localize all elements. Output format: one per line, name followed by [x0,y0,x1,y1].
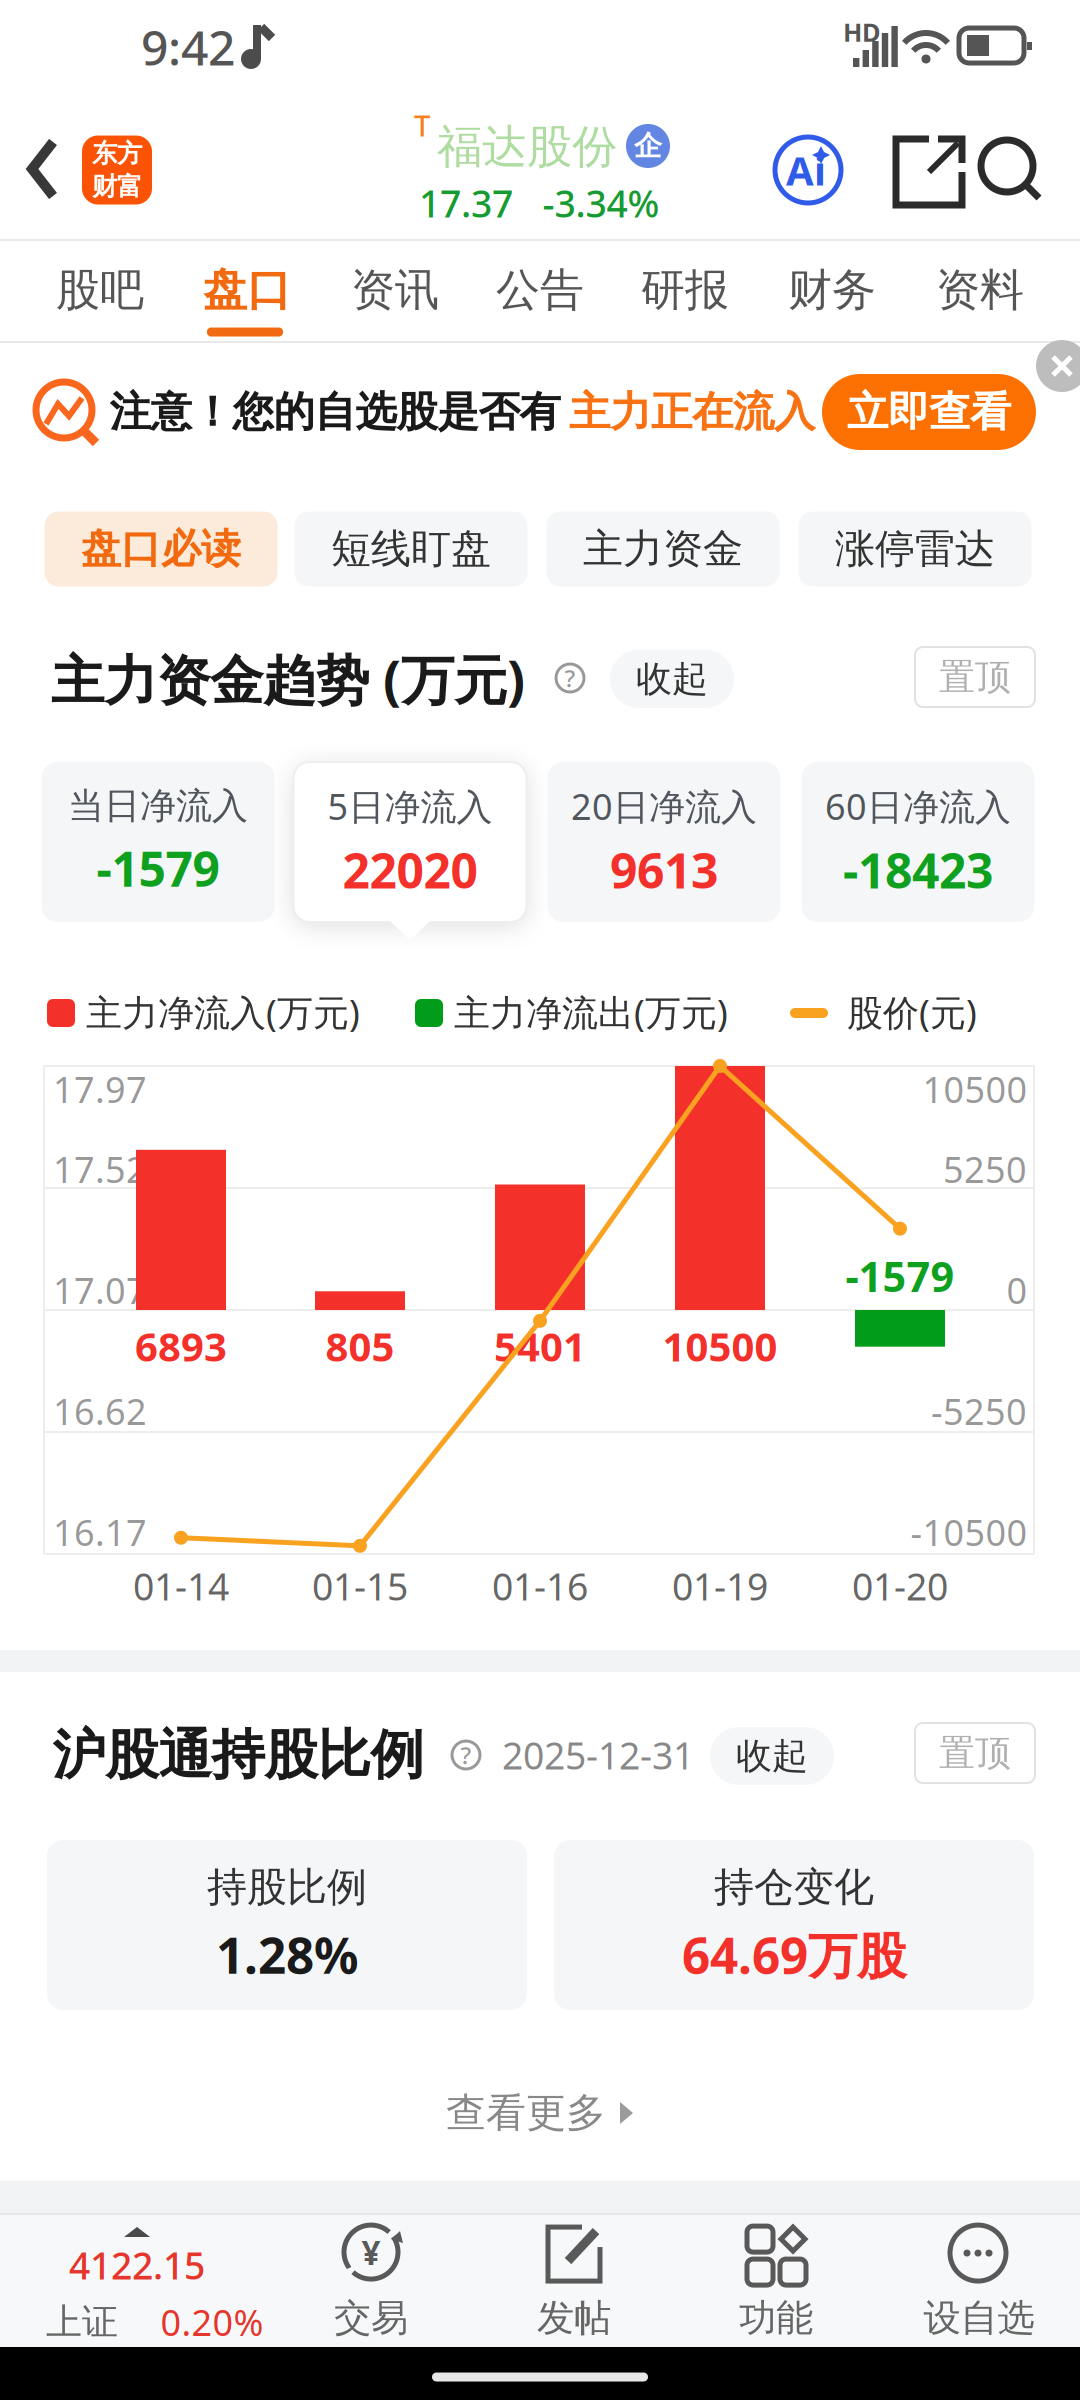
staticText: -10500 [910,1508,1027,1556]
staticText: -5250 [931,1387,1027,1435]
button[interactable]: 财务 [762,244,902,336]
staticText: 交易 [334,2295,408,2341]
staticText: 01-19 [672,1561,768,1611]
staticText: 股价(元) [847,988,977,1036]
button[interactable]: 盘口 [177,244,317,336]
staticText: 16.62 [53,1387,147,1435]
staticText: ? [564,662,575,694]
staticText: 1.28% [216,1922,358,1987]
staticText: 立即查看 [847,387,1011,437]
staticText: 当日净流入 [68,784,248,828]
staticText: 17.07 [53,1266,147,1314]
staticText: 01-14 [133,1561,229,1611]
staticText: 805 [325,1319,394,1372]
button[interactable]: Trade [276,2219,466,2343]
staticText: 0 [1006,1266,1027,1314]
button[interactable]: Ai assistant [772,134,844,206]
staticText: 功能 [739,2295,813,2341]
button[interactable]: Search [977,138,1043,202]
staticText: 盘口必读 [81,524,241,573]
button[interactable]: 主力资金 [546,511,779,586]
button[interactable]: 当日净流入 [41,762,274,922]
staticText: 01-20 [852,1561,948,1611]
staticText: -1579 [96,836,219,900]
button[interactable]: 5日净流入 [293,762,526,922]
staticText: 60日净流入 [825,782,1011,830]
staticText: 主力净流入(万元) [86,988,360,1036]
staticText: 10500 [662,1319,777,1372]
button[interactable]: 短线盯盘 [294,511,527,586]
button[interactable]: Close banner [1036,340,1080,392]
staticText: -3.34% [542,178,659,228]
button[interactable]: Share [891,134,967,210]
staticText: 收起 [736,1734,808,1778]
button[interactable]: 股吧 [30,244,170,336]
staticText: 16.17 [53,1508,147,1556]
staticText: 持仓变化 [714,1863,874,1912]
staticText: 涨停雷达 [835,524,995,573]
button[interactable]: 20日净流入 [547,762,780,922]
staticText: 0.20% [160,2298,263,2346]
staticText: 盘口 [203,263,291,317]
staticText: 资料 [936,263,1024,317]
staticText: 9613 [610,838,718,902]
staticText: 5日净流入 [327,782,492,830]
staticText: 2025-12-31 [502,1730,694,1780]
staticText: 收起 [636,657,708,701]
button[interactable]: 公告 [470,244,610,336]
button[interactable]: 立即查看 [822,374,1036,450]
staticText: 主力正在流入 [569,387,815,437]
button[interactable]: 东方 [82,135,152,204]
button[interactable]: Features [681,2219,871,2343]
button[interactable]: 盘口必读 [44,511,277,586]
staticText: 东方 [92,138,142,169]
staticText: 64.69万股 [682,1922,906,1987]
button[interactable]: 置顶 [915,647,1035,707]
staticText: 福达股份 [437,119,617,175]
staticText: 置顶 [939,1731,1011,1775]
button[interactable]: 查看更多 [446,2088,634,2137]
staticText: HD [843,15,881,49]
button[interactable]: 资讯 [325,244,465,336]
staticText: 查看更多 [446,2088,606,2137]
staticText: ? [460,1739,471,1771]
staticText: 17.37 [419,178,513,228]
staticText: Ai [786,143,826,196]
staticText: 发帖 [537,2295,611,2341]
staticText: 财务 [788,263,876,317]
staticText: 公告 [496,263,584,317]
staticText: 17.97 [53,1065,147,1113]
staticText: 股吧 [56,263,144,317]
staticText: 20日净流入 [571,782,757,830]
staticText: T [414,105,430,144]
staticText: 资讯 [351,263,439,317]
staticText: 22020 [342,838,477,902]
staticText: 上证 [46,2300,118,2344]
staticText: 4122.15 [69,2240,205,2290]
staticText: 9:42 [141,15,235,79]
staticText: 主力资金 [583,524,743,573]
staticText: ¥ [361,2230,380,2274]
button[interactable]: Post [479,2219,669,2343]
staticText: -18423 [843,838,993,902]
button[interactable]: Back [10,139,74,199]
button[interactable]: 置顶 [915,1723,1035,1783]
staticText: 主力资金趋势 (万元) [51,644,525,714]
staticText: 17.52 [53,1145,147,1193]
button[interactable]: 收起 [710,1727,834,1785]
button[interactable]: 资料 [910,244,1050,336]
staticText: 6893 [135,1319,227,1372]
button[interactable]: 4122.15 [0,2221,280,2345]
button[interactable]: 收起 [610,650,734,708]
staticText: 01-16 [492,1561,588,1611]
staticText: 沪股通持股比例 [52,1722,423,1788]
staticText: 设自选 [923,2295,1034,2341]
button[interactable]: Add to watchlist [884,2219,1074,2343]
staticText: 主力净流出(万元) [454,988,728,1036]
staticText: 注意！您的自选股是否有 [109,387,560,437]
staticText: 持股比例 [207,1863,367,1912]
staticText: 财富 [92,171,142,202]
button[interactable]: 研报 [615,244,755,336]
button[interactable]: 60日净流入 [801,762,1034,922]
button[interactable]: 涨停雷达 [798,511,1031,586]
